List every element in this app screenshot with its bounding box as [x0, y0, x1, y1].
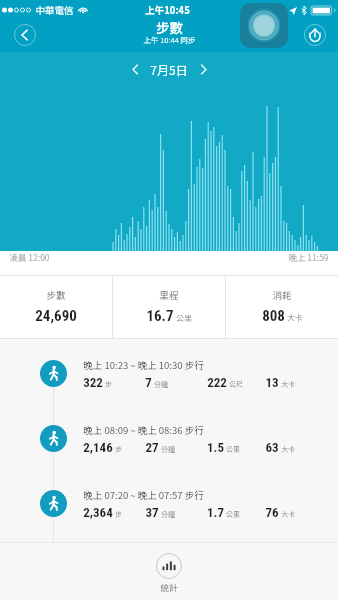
- staticText: 1.5: [207, 440, 224, 455]
- staticText: 步數: [46, 288, 66, 302]
- button[interactable]: 消耗: [226, 275, 338, 339]
- staticText: 分鐘: [161, 444, 175, 454]
- staticText: 37: [145, 505, 159, 520]
- staticText: 公里: [176, 312, 192, 324]
- staticText: 晚上 07:20 ~ 晚上 07:57 步行: [83, 488, 204, 502]
- staticText: 消耗: [272, 288, 292, 302]
- staticText: 分鐘: [161, 509, 175, 519]
- staticText: 公里: [226, 509, 240, 519]
- staticText: 晚上 10:23 ~ 晚上 10:30 步行: [83, 358, 204, 372]
- staticText: 2,146: [83, 440, 113, 455]
- button[interactable]: 晚上 10:23 ~ 晚上 10:30 步行: [0, 341, 338, 406]
- staticText: 上午 10:44 同步: [143, 34, 196, 45]
- staticText: 里程: [159, 288, 179, 302]
- staticText: 2,364: [83, 505, 113, 520]
- staticText: 27: [145, 440, 159, 455]
- staticText: 63: [265, 440, 279, 455]
- staticText: 大卡: [287, 312, 303, 324]
- staticText: 步: [105, 379, 112, 389]
- staticText: 7月5日: [150, 61, 188, 78]
- button[interactable]: Next day: [191, 57, 215, 81]
- button[interactable]: 晚上 08:09 ~ 晚上 08:36 步行: [0, 406, 338, 471]
- staticText: 公尺: [229, 379, 243, 389]
- staticText: 晚上 11:59: [288, 251, 329, 263]
- staticText: 大卡: [281, 509, 295, 519]
- button[interactable]: 晚上 07:20 ~ 晚上 07:57 步行: [0, 471, 338, 536]
- staticText: 13: [265, 375, 279, 390]
- button[interactable]: 統計: [156, 553, 182, 593]
- button[interactable]: 里程: [113, 275, 225, 339]
- staticText: 大卡: [281, 444, 295, 454]
- staticText: 222: [207, 375, 227, 390]
- staticText: 中華電信: [35, 3, 74, 17]
- staticText: 統計: [160, 581, 178, 593]
- staticText: 步數: [156, 17, 183, 37]
- button[interactable]: Back: [14, 24, 36, 46]
- staticText: 凌晨 12:00: [9, 251, 50, 263]
- button[interactable]: AssistiveTouch: [240, 3, 288, 48]
- staticText: 分鐘: [154, 379, 168, 389]
- staticText: 上午10:45: [145, 3, 190, 17]
- staticText: 16.7: [146, 307, 174, 325]
- staticText: 1.7: [207, 505, 224, 520]
- button[interactable]: Share: [304, 24, 326, 46]
- button[interactable]: Previous day: [123, 57, 147, 81]
- staticText: 步: [115, 444, 122, 454]
- staticText: 322: [83, 375, 103, 390]
- staticText: 大卡: [281, 379, 295, 389]
- staticText: 7: [145, 375, 152, 390]
- staticText: 76: [265, 505, 279, 520]
- staticText: 公里: [226, 444, 240, 454]
- staticText: 晚上 08:09 ~ 晚上 08:36 步行: [83, 423, 204, 437]
- staticText: 808: [262, 307, 285, 325]
- button[interactable]: 步數: [0, 275, 112, 339]
- staticText: 24,690: [35, 307, 77, 325]
- staticText: 步: [115, 509, 122, 519]
